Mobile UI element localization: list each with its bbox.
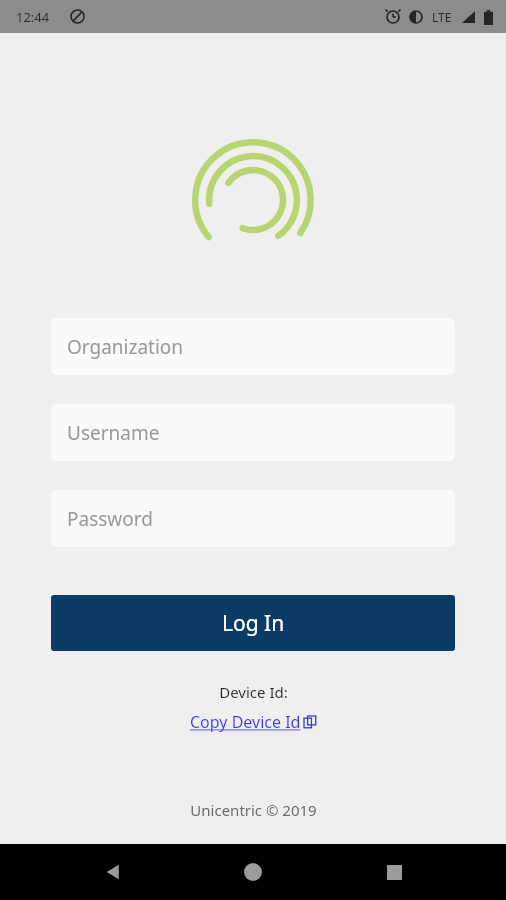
button[interactable]: Password [51,490,455,547]
button[interactable]: Organization [51,318,455,375]
button[interactable]: Copy Device Id [186,709,320,735]
staticText: Copy Device Id [190,711,301,733]
button[interactable]: Username [51,404,455,461]
button[interactable]: Log In [51,595,455,651]
button[interactable]: Recent apps [366,844,422,900]
button[interactable]: Back [85,844,141,900]
staticText: LTE [432,9,452,25]
staticText: Username [67,420,160,446]
button[interactable]: Home [225,844,281,900]
staticText: Organization [67,334,184,360]
staticText: Device Id: [219,682,288,702]
staticText: Password [67,506,153,532]
staticText: Log In [222,609,285,638]
other: Copy Device Id [304,716,316,728]
staticText: 12:44 [16,8,50,26]
staticText: Unicentric © 2019 [190,800,317,820]
